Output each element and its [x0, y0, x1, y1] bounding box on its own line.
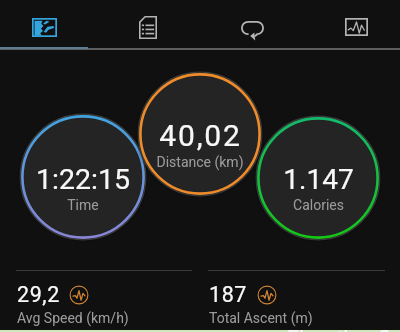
staticText: 40,02	[159, 118, 242, 153]
button[interactable]: 40,02	[137, 71, 263, 197]
staticText: 1:22:15	[36, 163, 130, 196]
staticText: Elevation Gain	[287, 326, 400, 332]
staticText: 187	[209, 282, 248, 307]
button[interactable]: 1:22:15	[19, 113, 147, 241]
button[interactable]: 29,2	[16, 270, 192, 332]
button[interactable]: 1.147	[255, 115, 381, 241]
staticText: Time	[67, 197, 99, 213]
staticText: Avg Speed (km/h)	[17, 310, 129, 326]
staticText: Calories	[293, 197, 344, 213]
button[interactable]: Details	[96, 0, 200, 46]
button[interactable]: Map route	[0, 0, 96, 46]
button[interactable]: 187	[208, 270, 385, 332]
button[interactable]: Laps	[200, 0, 304, 46]
staticText: 1.147	[283, 163, 354, 196]
staticText: Distance (km)	[156, 154, 244, 170]
staticText: Total Ascent (m)	[209, 310, 313, 326]
button[interactable]: Graphs	[304, 0, 400, 46]
staticText: 29,2	[17, 282, 60, 307]
